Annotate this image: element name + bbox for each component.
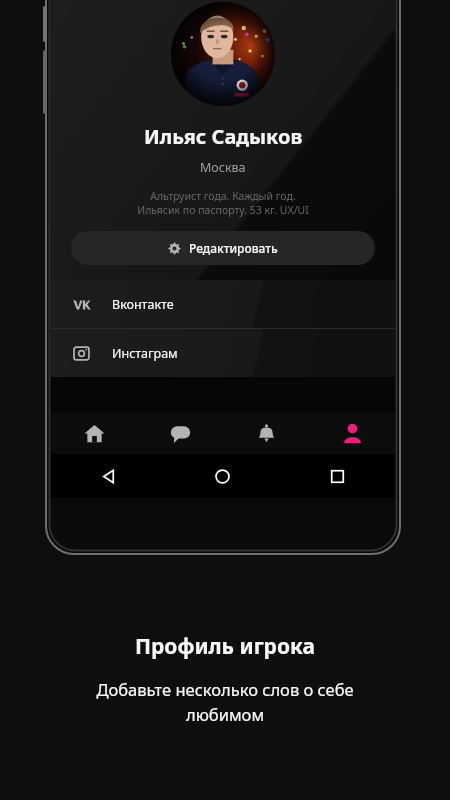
button[interactable]: Вконтакте [51,280,395,328]
button[interactable]: Notifications [223,412,309,454]
button[interactable]: Back [51,454,165,498]
button[interactable]: Recents [280,454,395,498]
staticText: Добавьте несколько слов о себе любимом [0,678,450,726]
button[interactable]: Home [51,412,137,454]
staticText: Москва [200,159,246,176]
staticText: Инстаграм [112,345,178,362]
staticText: Ильяс Садыков [144,123,303,150]
button[interactable]: Инстаграм [51,329,395,377]
staticText: Альтруист года. Каждый год. Ильясик по п… [137,189,309,217]
button[interactable]: Profile [309,412,395,454]
staticText: Редактировать [189,240,278,256]
button[interactable]: Messages [137,412,223,454]
staticText: Профиль игрока [135,632,316,661]
button[interactable]: Home [165,454,280,498]
button[interactable]: Редактировать [71,231,375,265]
staticText: Вконтакте [112,296,174,313]
